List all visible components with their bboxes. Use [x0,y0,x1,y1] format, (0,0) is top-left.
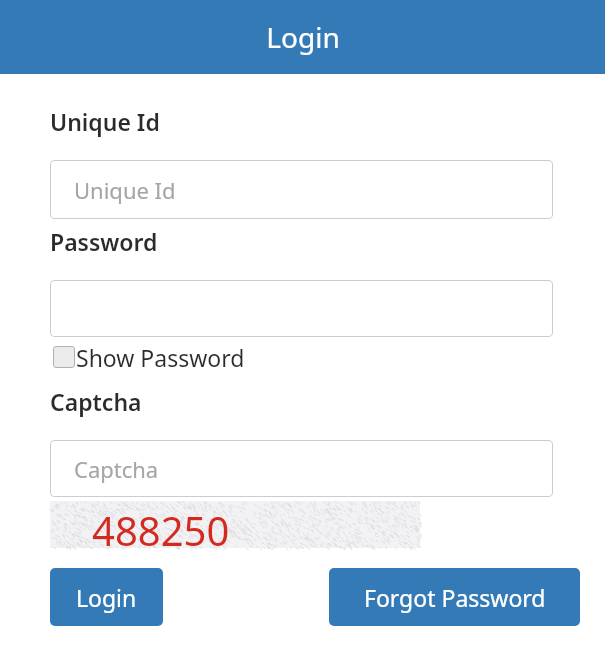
staticText: Captcha [74,454,159,484]
staticText: Forgot Password [364,582,546,613]
staticText: Show Password [76,342,245,372]
staticText: Unique Id [74,175,176,205]
staticText: Login [76,582,137,613]
button[interactable] [50,280,553,337]
staticText: Password [50,226,158,257]
staticText: Captcha [50,386,142,417]
other: Captcha image [50,501,420,548]
staticText: 488250 [92,503,230,550]
button[interactable]: Captcha [50,440,553,497]
button[interactable]: Login [50,568,163,626]
staticText: Unique Id [50,106,160,137]
button[interactable]: Show Password [50,342,280,372]
button[interactable]: Forgot Password [329,568,580,626]
button[interactable]: Unique Id [50,160,553,219]
staticText: Login [266,18,340,56]
